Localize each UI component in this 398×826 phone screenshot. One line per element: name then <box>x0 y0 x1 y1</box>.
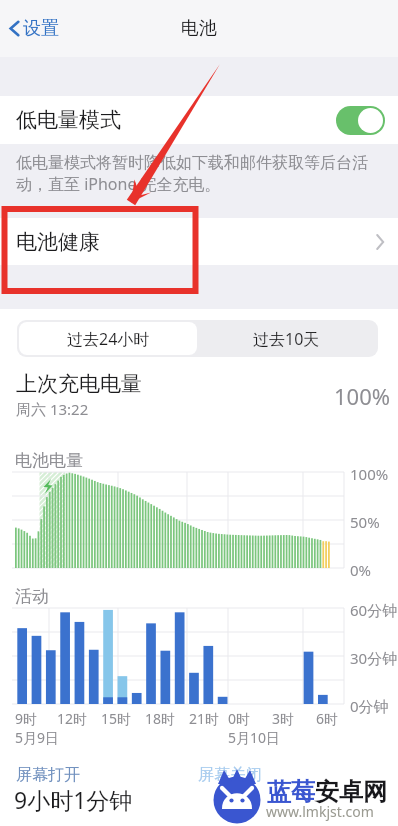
staticText: 电池健康 <box>16 229 100 255</box>
staticText: 9小时1分钟 <box>14 784 133 815</box>
staticText: 15时 <box>101 709 132 728</box>
staticText: 蓝莓 <box>267 777 315 807</box>
staticText: 上次充电电量 <box>16 371 142 397</box>
staticText: 设置 <box>23 17 59 40</box>
staticText: 100% <box>334 381 391 411</box>
staticText: 0分钟 <box>350 696 389 716</box>
other: 低电量模式开关 <box>336 106 385 135</box>
staticText: 屏幕打开 <box>16 765 80 785</box>
staticText: 低电量模式将暂时降低如下载和邮件获取等后台活动，直至 iPhone 完全充电。 <box>16 153 388 195</box>
staticText: 过去24小时 <box>67 328 150 350</box>
staticText: 活动 <box>15 586 49 607</box>
staticText: 电池 <box>181 17 217 40</box>
staticText: 5月10日 <box>228 728 281 747</box>
staticText: 低电量模式 <box>16 107 121 133</box>
staticText: 0时 <box>228 709 251 728</box>
staticText: 50% <box>350 512 380 532</box>
button[interactable]: 设置 <box>0 9 69 48</box>
staticText: 电池电量 <box>15 450 83 471</box>
button[interactable]: 低电量模式 <box>0 96 398 144</box>
staticText: 12时 <box>57 709 88 728</box>
staticText: 5月9日 <box>15 728 60 747</box>
staticText: 3时 <box>272 709 295 728</box>
staticText: 周六 13:22 <box>16 399 89 419</box>
staticText: www.lmkjst.com <box>266 802 374 821</box>
button[interactable]: 过去10天 <box>197 322 376 355</box>
staticText: 18时 <box>145 709 176 728</box>
staticText: 6时 <box>316 709 339 728</box>
staticText: 21时 <box>189 709 220 728</box>
staticText: 60分钟 <box>350 600 398 620</box>
staticText: 过去10天 <box>253 328 320 350</box>
staticText: 30分钟 <box>350 648 398 668</box>
staticText: 安卓网 <box>315 777 387 807</box>
staticText: 屏幕关闭 <box>198 765 262 785</box>
staticText: 9时 <box>15 709 38 728</box>
button[interactable]: 电池健康 <box>0 218 398 265</box>
button[interactable]: 过去24小时 <box>19 322 197 355</box>
staticText: 100% <box>350 464 389 484</box>
staticText: 0% <box>350 560 372 580</box>
